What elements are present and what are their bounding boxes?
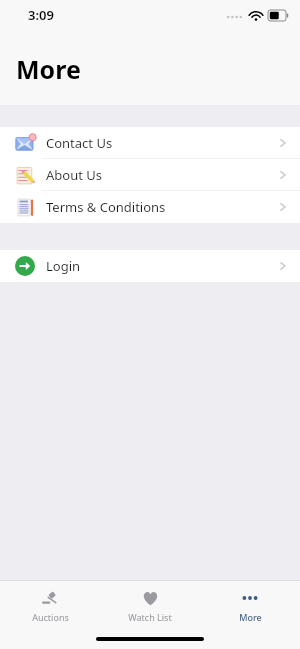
button[interactable]: Login: [0, 250, 300, 282]
staticText: Login: [46, 257, 81, 275]
staticText: More: [16, 52, 81, 86]
staticText: Watch List: [128, 611, 172, 623]
staticText: More: [239, 611, 262, 623]
button[interactable]: More: [200, 584, 300, 627]
staticText: Terms & Conditions: [46, 198, 166, 216]
staticText: Contact Us: [46, 134, 113, 152]
staticText: 3:09: [28, 6, 54, 24]
button[interactable]: Auctions: [0, 584, 100, 627]
button[interactable]: About Us: [0, 159, 300, 191]
staticText: Auctions: [32, 611, 69, 623]
staticText: About Us: [46, 166, 103, 184]
button[interactable]: Watch List: [100, 584, 200, 627]
button[interactable]: Terms & Conditions: [0, 191, 300, 223]
button[interactable]: Contact Us: [0, 127, 300, 159]
